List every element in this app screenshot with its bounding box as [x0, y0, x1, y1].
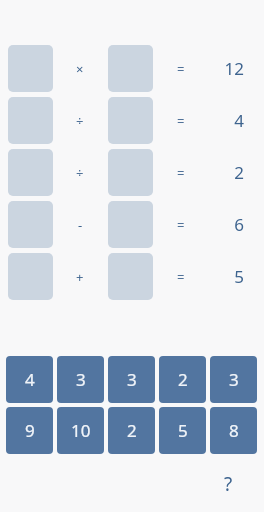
- button[interactable]: 3: [210, 356, 257, 403]
- staticText: 12: [224, 57, 244, 80]
- staticText: ×: [76, 60, 84, 78]
- staticText: 2: [234, 161, 244, 184]
- staticText: ?: [224, 471, 233, 497]
- staticText: 8: [229, 419, 239, 442]
- button[interactable]: Empty slot: [8, 201, 53, 248]
- staticText: 3: [76, 368, 86, 391]
- staticText: 9: [25, 419, 35, 442]
- staticText: 5: [178, 419, 188, 442]
- staticText: =: [177, 112, 185, 130]
- button[interactable]: Empty slot: [108, 97, 153, 144]
- button[interactable]: Empty slot: [8, 253, 53, 300]
- staticText: -: [78, 216, 83, 234]
- staticText: =: [177, 268, 185, 286]
- staticText: =: [177, 60, 185, 78]
- button[interactable]: Empty slot: [108, 201, 153, 248]
- staticText: 2: [127, 419, 137, 442]
- staticText: 6: [234, 213, 244, 236]
- button[interactable]: 9: [6, 407, 53, 454]
- button[interactable]: 10: [57, 407, 104, 454]
- staticText: ÷: [76, 164, 84, 182]
- staticText: 2: [178, 368, 188, 391]
- staticText: =: [177, 164, 185, 182]
- staticText: ÷: [76, 112, 84, 130]
- staticText: +: [76, 268, 84, 286]
- button[interactable]: 3: [57, 356, 104, 403]
- button[interactable]: Empty slot: [108, 253, 153, 300]
- staticText: 3: [127, 368, 137, 391]
- button[interactable]: Empty slot: [108, 45, 153, 92]
- button[interactable]: Empty slot: [8, 45, 53, 92]
- button[interactable]: Empty slot: [8, 97, 53, 144]
- button[interactable]: 3: [108, 356, 155, 403]
- button[interactable]: 8: [210, 407, 257, 454]
- staticText: 5: [234, 265, 244, 288]
- button[interactable]: 2: [108, 407, 155, 454]
- staticText: =: [177, 216, 185, 234]
- button[interactable]: 4: [6, 356, 53, 403]
- button[interactable]: 2: [159, 356, 206, 403]
- staticText: 4: [234, 109, 244, 132]
- staticText: 10: [71, 419, 91, 442]
- staticText: 4: [25, 368, 35, 391]
- button[interactable]: Empty slot: [108, 149, 153, 196]
- button[interactable]: Help: [214, 470, 242, 498]
- staticText: 3: [229, 368, 239, 391]
- button[interactable]: Empty slot: [8, 149, 53, 196]
- button[interactable]: 5: [159, 407, 206, 454]
